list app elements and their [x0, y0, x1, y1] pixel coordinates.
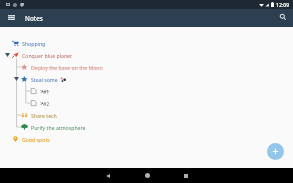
staticText: Conquer blue planet	[22, 52, 72, 59]
button[interactable]: Recents	[173, 168, 199, 183]
button[interactable]: Home	[134, 168, 160, 183]
button[interactable]: #1	[0, 85, 293, 97]
staticText: 12:09	[276, 1, 290, 8]
staticText: Good spots	[22, 136, 50, 143]
staticText: Purify the atmosphere	[31, 124, 86, 131]
staticText: Shopping	[22, 40, 46, 47]
button[interactable]: Add note	[267, 143, 284, 160]
staticText: #2	[43, 100, 50, 107]
button[interactable]: Menu	[0, 9, 22, 27]
staticText: #1	[43, 88, 50, 95]
staticText: Deploy the base on the Moon	[31, 64, 103, 71]
button[interactable]: Purify the atmosphere	[0, 121, 293, 133]
button[interactable]: #2	[0, 97, 293, 109]
button[interactable]: Back	[95, 168, 121, 183]
button[interactable]: Share tech	[0, 109, 293, 121]
button[interactable]: Search	[271, 9, 293, 27]
button[interactable]: Good spots	[0, 133, 293, 145]
staticText: Notes	[25, 14, 43, 23]
button[interactable]: Conquer blue planet	[0, 49, 293, 61]
button[interactable]: Steal some	[0, 73, 293, 85]
button[interactable]: Deploy the base on the Moon	[0, 61, 293, 73]
staticText: Share tech	[31, 112, 57, 119]
staticText: Steal some	[31, 76, 58, 83]
button[interactable]: Shopping	[0, 37, 293, 49]
